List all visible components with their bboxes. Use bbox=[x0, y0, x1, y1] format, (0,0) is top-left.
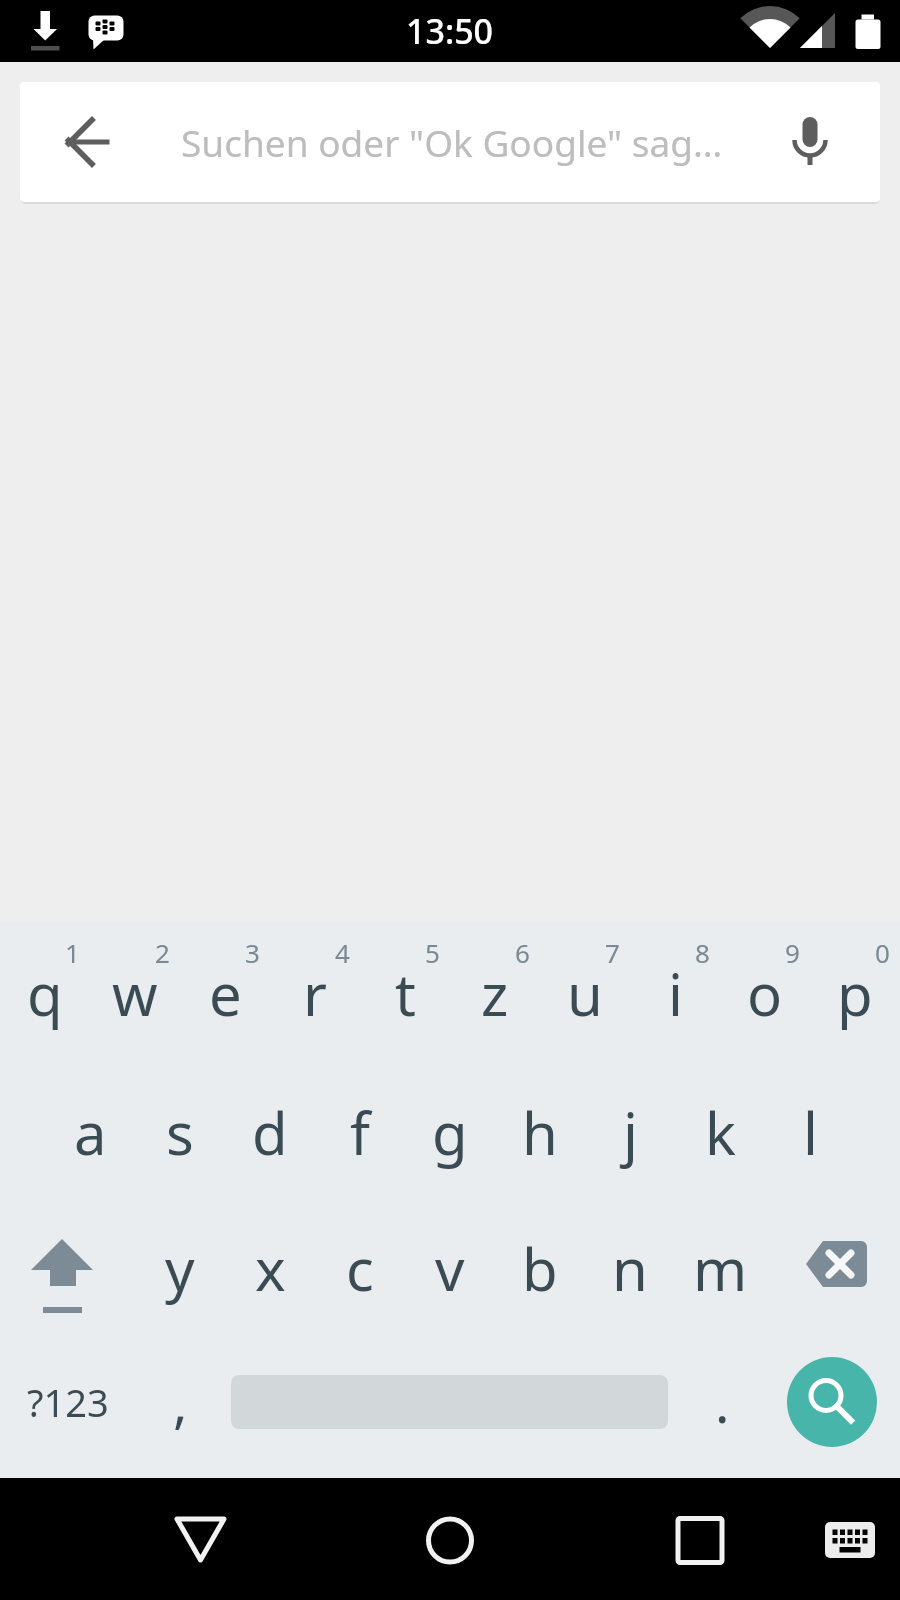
staticText: 6 bbox=[515, 935, 530, 967]
staticText: y bbox=[165, 1229, 195, 1308]
button[interactable]: , bbox=[135, 1332, 225, 1472]
button[interactable]: o bbox=[720, 923, 810, 1063]
staticText: 8 bbox=[695, 935, 710, 967]
button[interactable] bbox=[810, 1499, 890, 1579]
staticText: f bbox=[350, 1093, 370, 1172]
button[interactable]: v bbox=[405, 1198, 495, 1338]
staticText: 5 bbox=[425, 935, 440, 967]
button[interactable]: c bbox=[315, 1198, 405, 1338]
staticText: q bbox=[27, 954, 63, 1033]
staticText: 13:50 bbox=[406, 8, 494, 54]
button[interactable]: k bbox=[675, 1062, 765, 1202]
staticText: n bbox=[612, 1229, 648, 1308]
button[interactable]: d bbox=[225, 1062, 315, 1202]
staticText: 3 bbox=[245, 935, 260, 967]
staticText: z bbox=[481, 954, 509, 1033]
button[interactable]: t bbox=[360, 923, 450, 1063]
staticText: r bbox=[303, 954, 327, 1033]
button[interactable]: j bbox=[585, 1062, 675, 1202]
staticText: b bbox=[522, 1229, 558, 1308]
staticText: j bbox=[623, 1093, 638, 1172]
button[interactable]: ?123 bbox=[0, 1332, 135, 1472]
button[interactable] bbox=[765, 1198, 900, 1338]
button[interactable]: i bbox=[630, 923, 720, 1063]
button[interactable] bbox=[160, 1499, 240, 1579]
button[interactable]: p bbox=[810, 923, 900, 1063]
button[interactable]: n bbox=[585, 1198, 675, 1338]
staticText: , bbox=[173, 1365, 188, 1439]
staticText: 2 bbox=[155, 935, 170, 967]
staticText: e bbox=[209, 954, 242, 1033]
button[interactable] bbox=[410, 1499, 490, 1579]
staticText: g bbox=[432, 1093, 468, 1172]
button[interactable] bbox=[48, 102, 128, 182]
button[interactable]: . bbox=[677, 1332, 767, 1472]
staticText: m bbox=[693, 1229, 748, 1308]
button[interactable]: h bbox=[495, 1062, 585, 1202]
staticText: 0 bbox=[875, 935, 890, 967]
button[interactable]: z bbox=[450, 923, 540, 1063]
staticText: x bbox=[255, 1229, 286, 1308]
button[interactable] bbox=[770, 102, 850, 182]
staticText: c bbox=[346, 1229, 374, 1308]
staticText: 7 bbox=[605, 935, 620, 967]
staticText: 4 bbox=[335, 935, 350, 967]
button[interactable]: q bbox=[0, 923, 90, 1063]
staticText: ?123 bbox=[27, 1376, 109, 1428]
staticText: 9 bbox=[785, 935, 800, 967]
staticText: a bbox=[74, 1093, 107, 1172]
button[interactable]: w bbox=[90, 923, 180, 1063]
staticText: d bbox=[252, 1093, 288, 1172]
staticText: p bbox=[837, 954, 873, 1033]
button[interactable]: s bbox=[135, 1062, 225, 1202]
button[interactable]: y bbox=[135, 1198, 225, 1338]
staticText: l bbox=[803, 1093, 818, 1172]
button[interactable]: u bbox=[540, 923, 630, 1063]
button[interactable]: a bbox=[45, 1062, 135, 1202]
button[interactable]: l bbox=[765, 1062, 855, 1202]
staticText: u bbox=[567, 954, 603, 1033]
staticText: t bbox=[395, 954, 416, 1033]
button[interactable] bbox=[787, 1357, 877, 1447]
staticText: s bbox=[166, 1093, 194, 1172]
staticText: 1 bbox=[65, 935, 80, 967]
staticText: w bbox=[112, 954, 158, 1033]
button[interactable]: m bbox=[675, 1198, 765, 1338]
button[interactable] bbox=[0, 1198, 135, 1338]
staticText: Suchen oder "Ok Google" sag… bbox=[181, 117, 723, 167]
button[interactable]: r bbox=[270, 923, 360, 1063]
staticText: k bbox=[705, 1093, 736, 1172]
staticText: h bbox=[522, 1093, 558, 1172]
button[interactable] bbox=[660, 1499, 740, 1579]
staticText: v bbox=[435, 1229, 465, 1308]
staticText: o bbox=[747, 954, 783, 1033]
staticText: i bbox=[668, 954, 683, 1033]
button[interactable]: f bbox=[315, 1062, 405, 1202]
button[interactable]: b bbox=[495, 1198, 585, 1338]
button[interactable]: x bbox=[225, 1198, 315, 1338]
button[interactable]: g bbox=[405, 1062, 495, 1202]
button[interactable]: e bbox=[180, 923, 270, 1063]
staticText: . bbox=[715, 1365, 730, 1439]
button[interactable]: Suchen oder "Ok Google" sag… bbox=[181, 82, 781, 202]
